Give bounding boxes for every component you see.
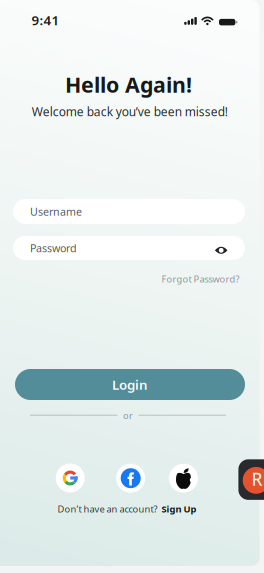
button[interactable]: Sign in with Apple xyxy=(169,464,198,493)
button[interactable]: Show password xyxy=(214,244,228,257)
staticText: Don’t have an account? xyxy=(57,503,157,515)
button[interactable]: Login xyxy=(15,369,245,400)
button[interactable]: Sign Up xyxy=(161,503,196,515)
button[interactable]: Sign in with Facebook xyxy=(116,464,145,493)
staticText: R xyxy=(251,467,262,490)
staticText: or xyxy=(123,409,133,421)
button[interactable]: Username xyxy=(13,199,245,224)
staticText: Welcome back you’ve been missed! xyxy=(32,104,228,119)
staticText: Hello Again! xyxy=(65,70,192,99)
button[interactable]: Sign in with Google xyxy=(56,463,85,492)
button[interactable]: Password xyxy=(13,236,245,260)
staticText: 9:41 xyxy=(31,11,59,29)
staticText: Forgot Password? xyxy=(161,273,239,285)
staticText: Password xyxy=(30,241,77,255)
button[interactable]: Forgot Password? xyxy=(161,273,239,285)
button[interactable]: Record xyxy=(238,459,264,500)
staticText: Login xyxy=(112,376,148,393)
staticText: Sign Up xyxy=(161,503,196,515)
staticText: Username xyxy=(30,204,82,219)
